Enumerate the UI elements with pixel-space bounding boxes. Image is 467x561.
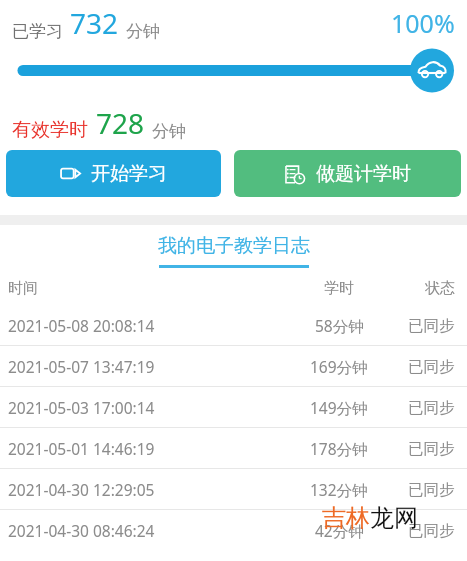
- staticText: 132分钟: [310, 479, 368, 500]
- staticText: 已同步: [408, 521, 455, 541]
- staticText: 2021-05-03 17:00:14: [8, 397, 155, 418]
- staticText: 已同步: [408, 439, 455, 459]
- staticText: 已学习: [12, 21, 63, 42]
- button[interactable]: 我的电子教学日志: [0, 225, 467, 271]
- staticText: 状态: [425, 279, 455, 298]
- staticText: 有效学时: [12, 118, 88, 142]
- button[interactable]: 2021-05-08 20:08:14: [0, 305, 467, 345]
- button[interactable]: 2021-05-01 14:46:19: [0, 428, 467, 468]
- staticText: 728: [96, 104, 145, 142]
- staticText: 开始学习: [91, 162, 167, 186]
- staticText: 吉林: [322, 503, 370, 533]
- staticText: 龙网: [370, 503, 418, 533]
- staticText: 100%: [391, 6, 455, 40]
- button[interactable]: 2021-05-03 17:00:14: [0, 387, 467, 427]
- staticText: 分钟: [126, 21, 160, 42]
- button[interactable]: 2021-04-30 12:29:05: [0, 469, 467, 509]
- staticText: 已同步: [408, 316, 455, 336]
- staticText: 2021-04-30 12:29:05: [8, 479, 155, 500]
- staticText: 178分钟: [310, 438, 368, 459]
- staticText: 2021-05-07 13:47:19: [8, 356, 155, 377]
- button[interactable]: 2021-04-30 08:46:24: [0, 510, 467, 550]
- staticText: 732: [70, 4, 119, 42]
- staticText: 149分钟: [310, 397, 368, 418]
- staticText: 169分钟: [310, 356, 368, 377]
- staticText: 2021-04-30 08:46:24: [8, 520, 155, 541]
- button[interactable]: 开始学习: [6, 150, 221, 197]
- staticText: 2021-05-08 20:08:14: [8, 315, 155, 336]
- staticText: 已同步: [408, 357, 455, 377]
- staticText: 2021-05-01 14:46:19: [8, 438, 155, 459]
- staticText: 已同步: [408, 480, 455, 500]
- staticText: 时间: [8, 279, 38, 298]
- staticText: 42分钟: [315, 520, 364, 541]
- button[interactable]: 2021-05-07 13:47:19: [0, 346, 467, 386]
- staticText: 做题计学时: [316, 162, 411, 186]
- staticText: 我的电子教学日志: [158, 234, 310, 258]
- button[interactable]: 做题计学时: [234, 150, 461, 197]
- staticText: 58分钟: [315, 315, 364, 336]
- staticText: 分钟: [152, 121, 186, 142]
- staticText: 已同步: [408, 398, 455, 418]
- staticText: 学时: [324, 279, 354, 298]
